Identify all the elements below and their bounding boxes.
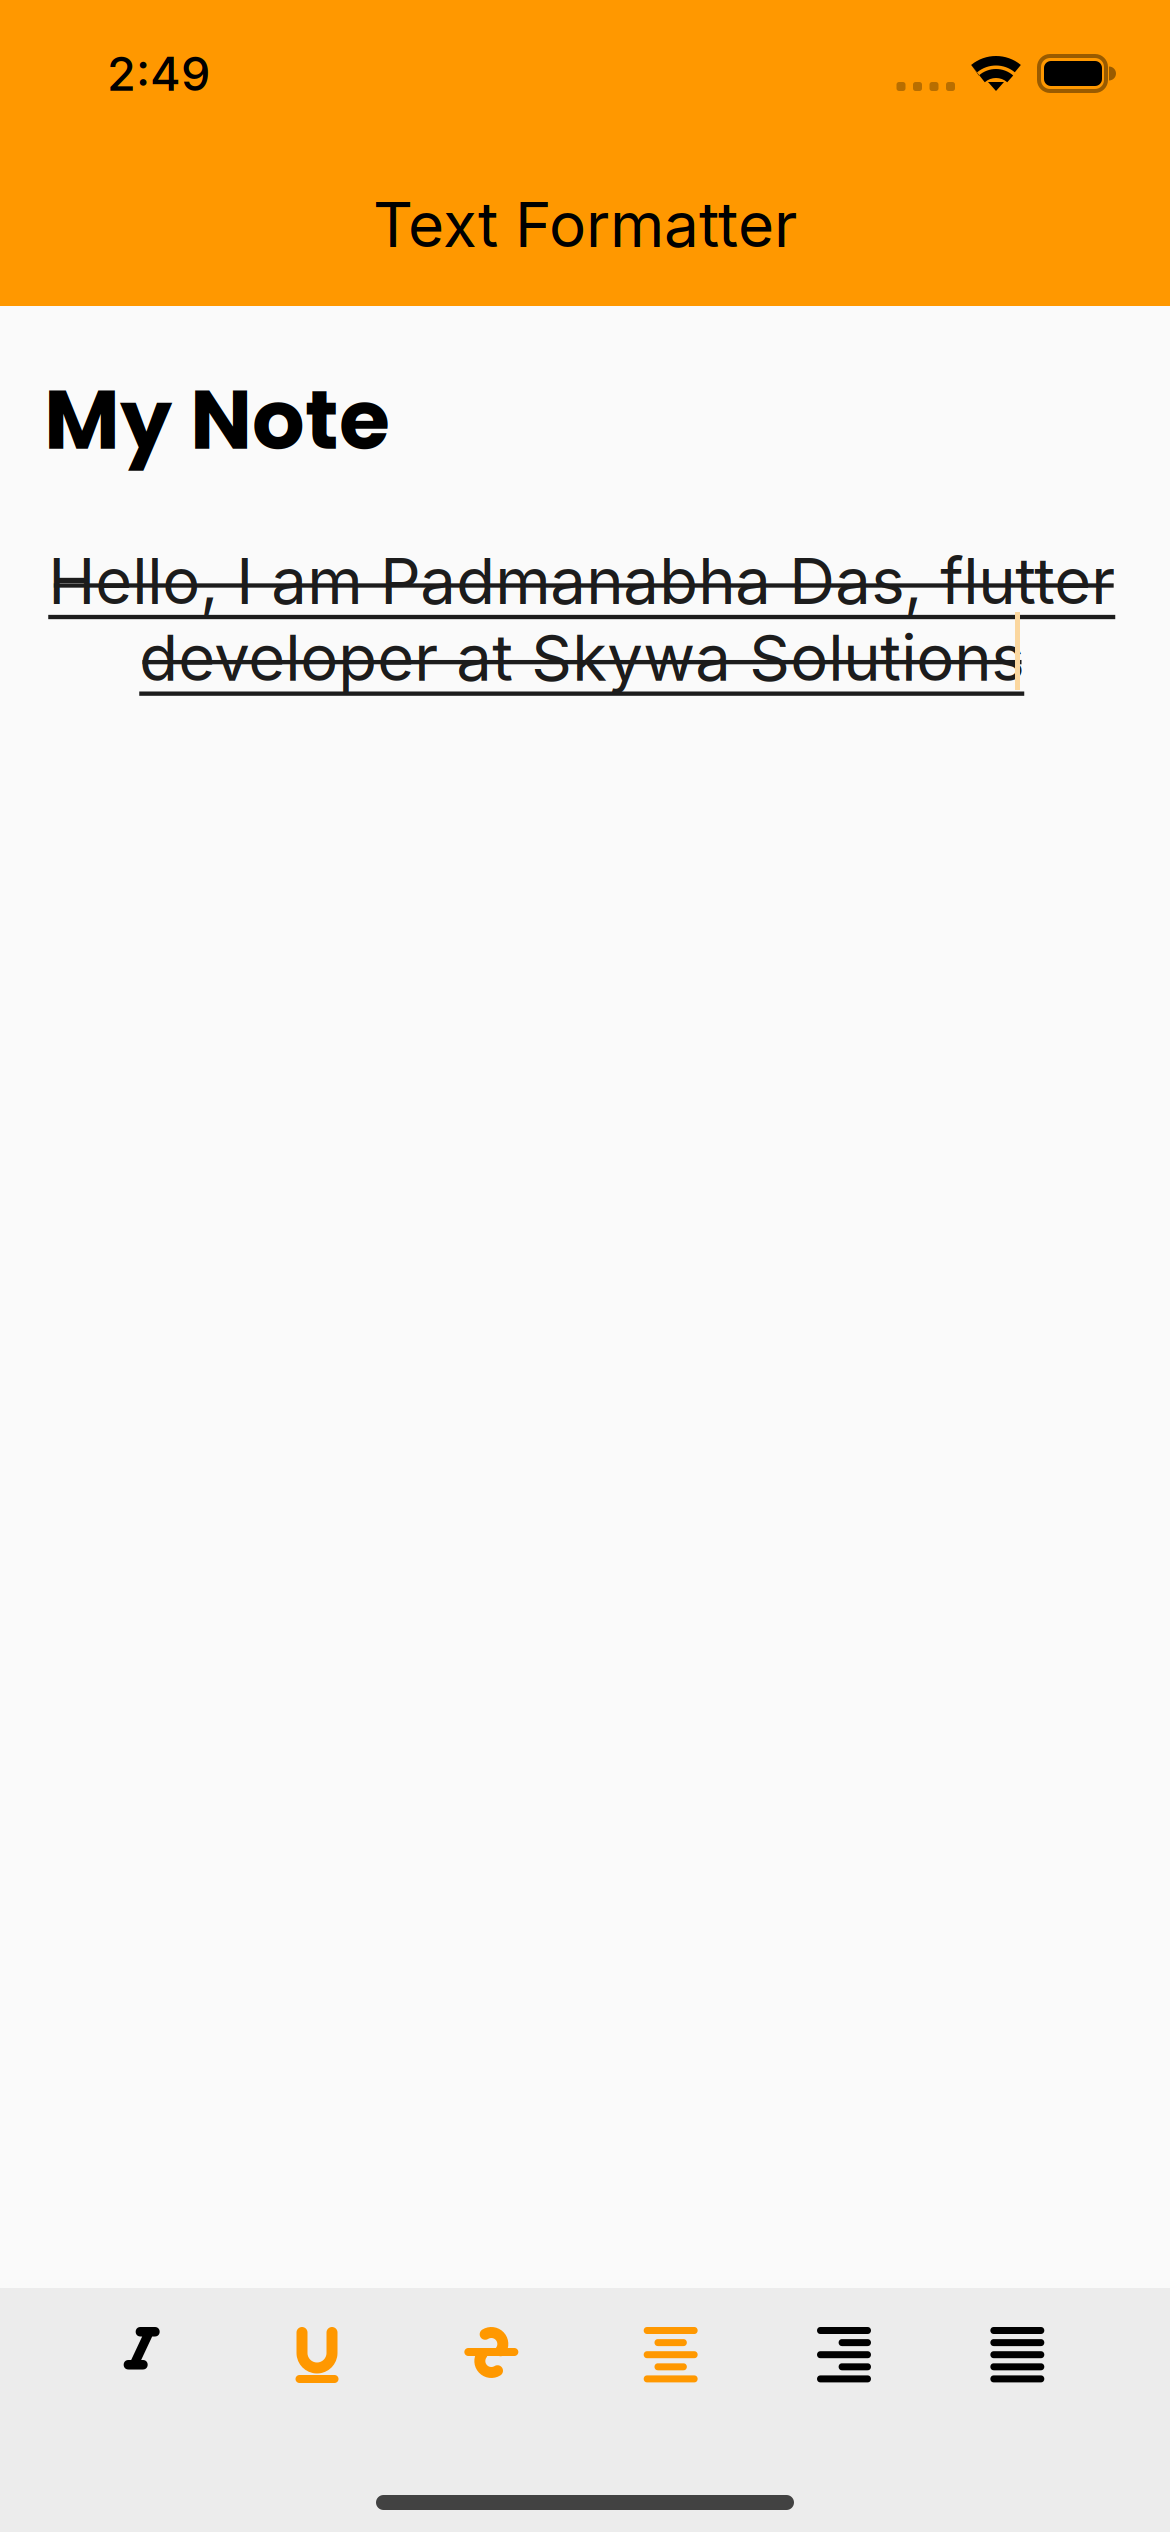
- staticText: My Note: [44, 362, 390, 478]
- button[interactable]: Underline: [238, 2315, 412, 2395]
- staticText: Hello, I am Padmanabha Das, flutter deve…: [48, 543, 1115, 696]
- button[interactable]: Italic: [65, 2315, 238, 2395]
- staticText: 2:49: [107, 45, 210, 102]
- button[interactable]: Strikethrough: [412, 2315, 585, 2395]
- staticText: Text Formatter: [373, 187, 797, 262]
- button[interactable]: Justify: [932, 2315, 1105, 2395]
- button[interactable]: Align right: [758, 2315, 932, 2395]
- button[interactable]: Align center: [585, 2315, 758, 2395]
